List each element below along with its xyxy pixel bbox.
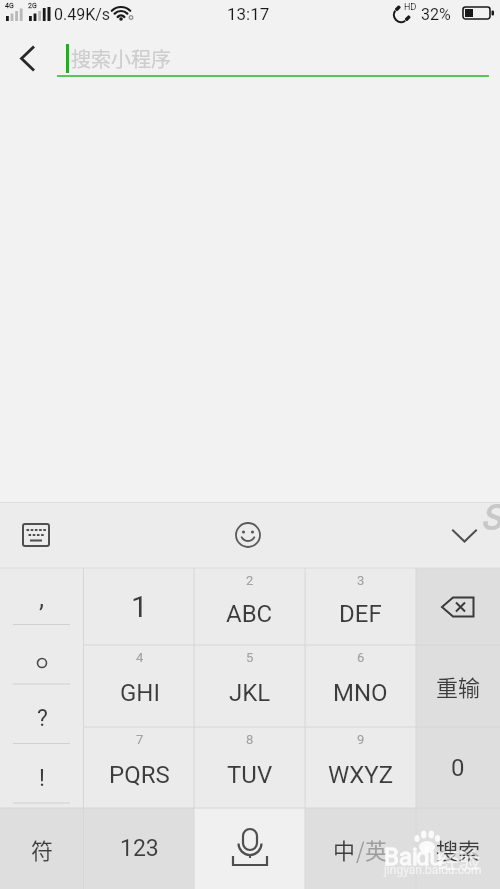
staticText: , [39,583,45,613]
staticText: 6 [357,650,365,665]
staticText: GHI [120,679,160,707]
staticText: 搜索小程序 [71,44,171,73]
button[interactable]: 2 [194,568,305,645]
staticText: PQRS [109,761,170,789]
staticText: 0.49K/s [54,5,111,24]
staticText: 英 [365,833,388,865]
button[interactable]: 重输 [416,645,500,727]
staticText: 3 [357,573,365,588]
staticText: 2 [246,573,254,588]
staticText: 32% [421,5,451,24]
staticText: TUV [227,761,273,789]
staticText: 经验 [438,844,480,874]
staticText: 7 [136,732,144,747]
staticText: du [416,843,443,871]
button[interactable] [194,808,305,889]
staticText: JKL [229,679,271,707]
button[interactable]: 1 [84,568,195,645]
staticText: 123 [120,835,159,862]
button[interactable]: 3 [305,568,416,645]
staticText: 0 [451,754,465,782]
staticText: DEF [339,600,382,628]
staticText: HD [404,2,417,13]
staticText: jingyan.baidu.com [384,863,482,877]
button[interactable] [444,520,486,552]
staticText: WXYZ [328,761,394,789]
button[interactable]: 4 [84,645,195,727]
staticText: 8 [246,732,254,747]
button[interactable]: 6 [305,645,416,727]
button[interactable]: 9 [305,727,416,808]
staticText: Bai [384,843,418,871]
staticText: 4G [5,2,14,10]
button[interactable] [416,568,500,645]
button[interactable]: , [0,568,84,628]
staticText: 5 [246,650,254,665]
button[interactable]: 中 [305,808,416,889]
staticText: 4 [136,650,144,665]
button[interactable]: ? [0,688,84,748]
button[interactable]: 7 [84,727,195,808]
button[interactable]: 8 [194,727,305,808]
button[interactable]: 123 [84,808,195,889]
staticText: MNO [333,679,388,707]
button[interactable]: 5 [194,645,305,727]
staticText: S [481,497,500,537]
button[interactable] [228,515,268,555]
button[interactable] [12,40,48,76]
staticText: 13:17 [227,4,270,24]
button[interactable] [16,518,56,552]
staticText: ? [37,705,48,732]
button[interactable]: 搜索 [416,808,500,889]
button[interactable] [0,628,84,688]
staticText: 1 [131,589,148,624]
button[interactable]: 符 [0,808,84,889]
staticText: / [356,833,365,865]
staticText: 2G [28,2,37,10]
staticText: 搜索 [436,833,481,865]
staticText: 符 [31,833,54,865]
staticText: 中 [333,833,356,865]
button[interactable]: ! [0,748,84,808]
staticText: 重输 [436,670,481,702]
staticText: ABC [226,600,273,628]
staticText: 9 [357,732,365,747]
button[interactable]: 0 [416,727,500,808]
staticText: ! [39,765,45,792]
